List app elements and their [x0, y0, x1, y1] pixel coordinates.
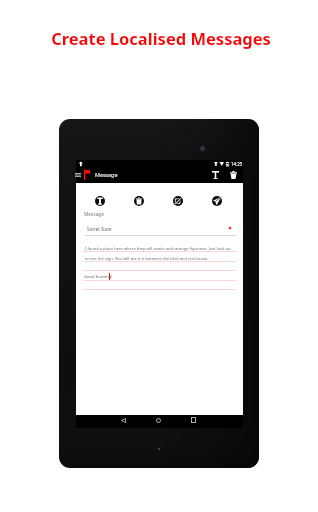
- staticText: Message: [95, 171, 118, 178]
- button[interactable]: Title style: [93, 194, 106, 207]
- staticText: Create Localised Messages: [2, 27, 318, 49]
- button[interactable]: Text formatting: [208, 168, 223, 181]
- staticText: Message: [84, 211, 104, 218]
- button[interactable]: Delete: [132, 194, 145, 207]
- staticText: Secret Stare: [87, 226, 112, 232]
- button[interactable]: Back: [117, 414, 129, 426]
- staticText: 14:25: [231, 161, 243, 167]
- button[interactable]: Edit: [171, 194, 184, 207]
- button[interactable]: Home: [152, 414, 164, 426]
- staticText: I found a place here where they sell exo…: [85, 246, 231, 252]
- button[interactable]: Send: [210, 194, 223, 207]
- staticText: Good hunting!: [84, 274, 113, 280]
- button[interactable]: Recent apps: [187, 414, 199, 426]
- button[interactable]: Delete message: [226, 168, 241, 181]
- button[interactable]: Open navigation menu: [72, 169, 83, 180]
- staticText: to see the sign. You will see it is betw…: [85, 256, 209, 262]
